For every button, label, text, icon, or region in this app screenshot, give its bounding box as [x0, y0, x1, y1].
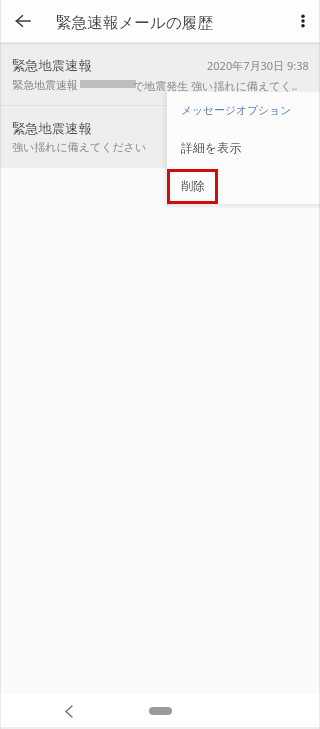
- button[interactable]: 緊急地震速報: [0, 106, 320, 168]
- button[interactable]: Back: [7, 5, 39, 37]
- staticText: 緊急地震速報: [12, 78, 78, 92]
- button[interactable]: 緊急地震速報: [0, 43, 320, 105]
- staticText: 緊急速報メールの履歴: [56, 13, 214, 33]
- staticText: 2020年7月30日 9:38: [207, 58, 309, 73]
- button[interactable]: 詳細を表示: [167, 129, 320, 166]
- button[interactable]: 削除: [167, 166, 320, 204]
- button[interactable]: Back: [58, 700, 80, 722]
- staticText: メッセージオプション: [181, 104, 292, 118]
- staticText: 強い揺れに備えてください: [12, 140, 147, 154]
- staticText: 緊急地震速報: [12, 57, 92, 74]
- staticText: 削除: [181, 178, 205, 193]
- button[interactable]: メッセージオプション: [167, 92, 320, 129]
- staticText: 緊急地震速報: [12, 120, 92, 137]
- button[interactable]: More options: [287, 5, 319, 37]
- button[interactable]: Home: [149, 707, 172, 715]
- staticText: で地震発生 強い揺れに備えてく..: [133, 78, 298, 93]
- staticText: 詳細を表示: [181, 140, 242, 155]
